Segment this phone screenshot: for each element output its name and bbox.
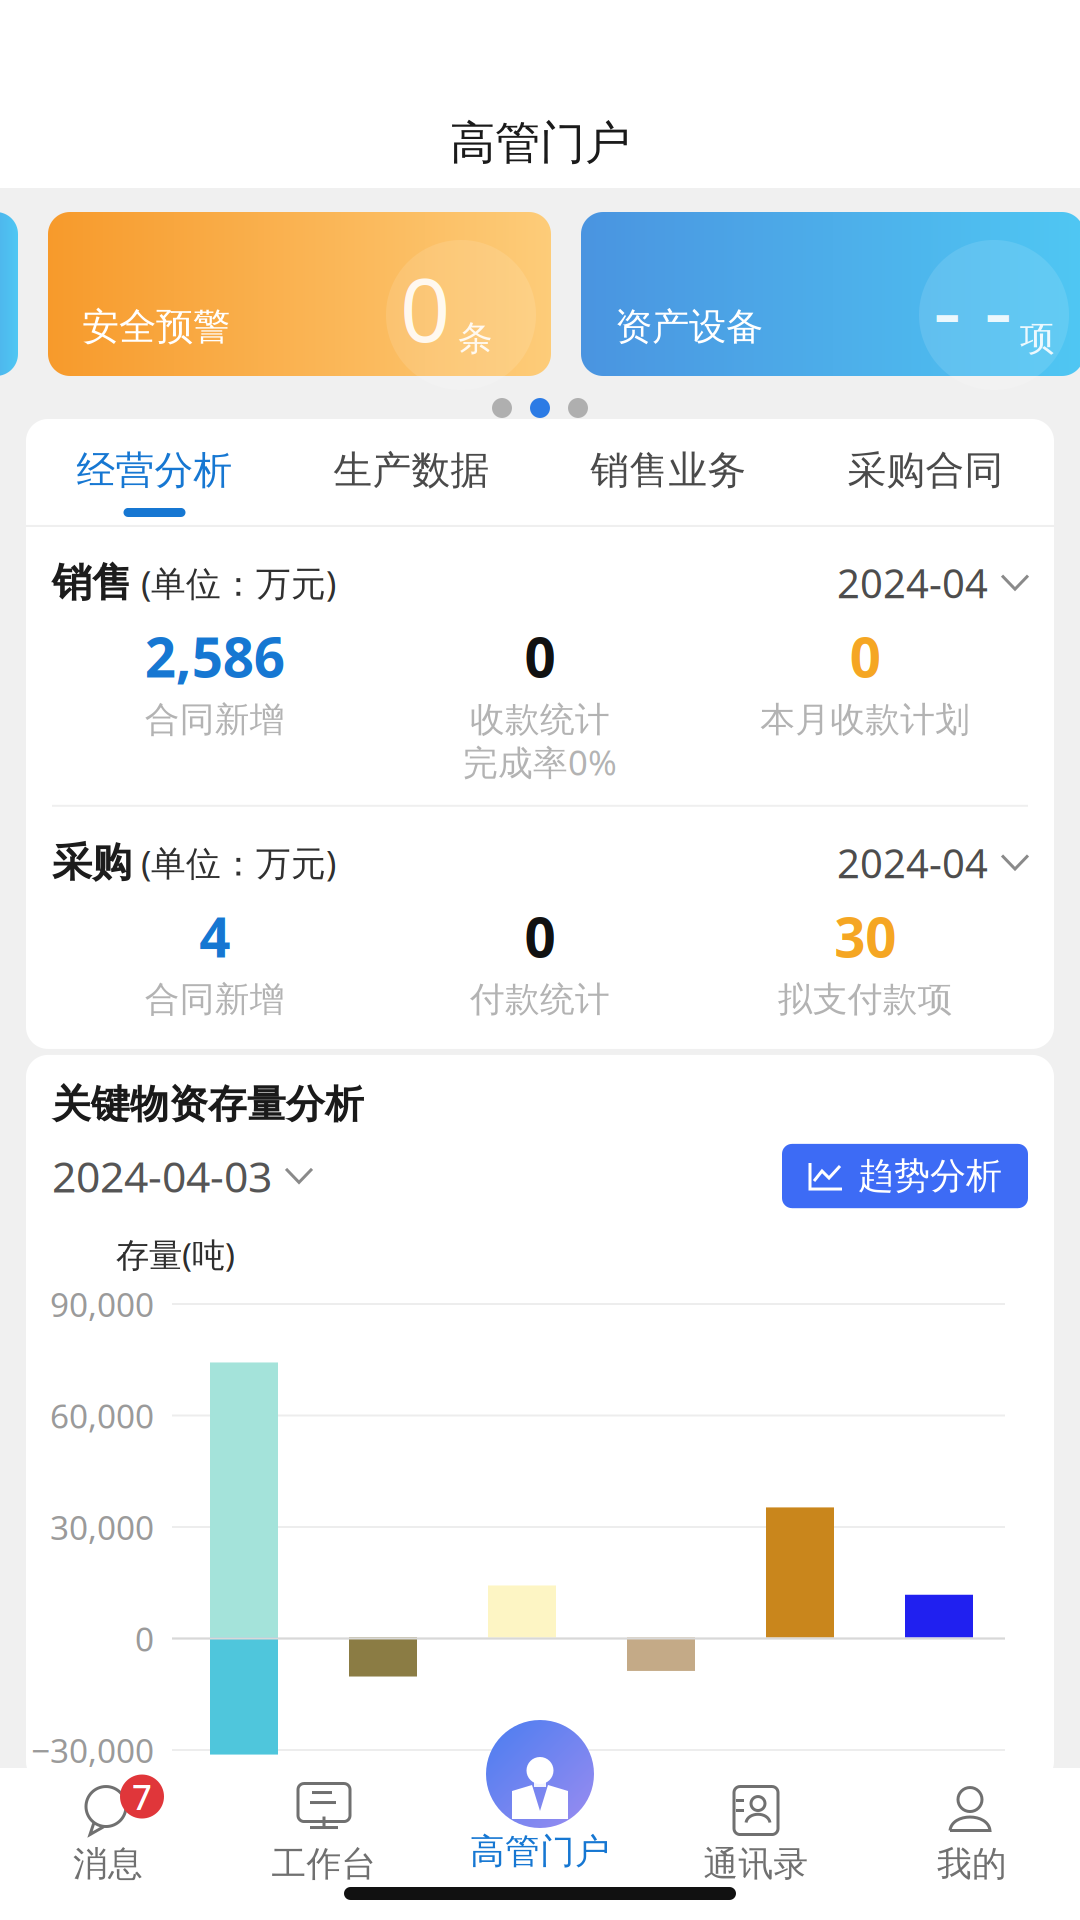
button[interactable]: 2024-04	[837, 561, 1028, 605]
button[interactable]: 工作台	[216, 1766, 432, 1881]
staticText: 销售业务	[590, 451, 746, 490]
staticText: 高管门户	[450, 120, 630, 166]
button[interactable]: 趋势分析	[782, 1144, 1028, 1208]
staticText: 趋势分析	[858, 1158, 1002, 1194]
staticText: 0	[850, 627, 881, 686]
staticText: 消息	[73, 1846, 143, 1881]
button[interactable]: 2024-04-03	[52, 1153, 312, 1199]
staticText: 完成率0%	[463, 743, 617, 781]
button[interactable]: 生产数据	[283, 441, 540, 525]
staticText: 7	[132, 1778, 152, 1815]
button[interactable]: 2024-04	[837, 841, 1028, 884]
staticText: (单位：万元)	[132, 564, 336, 602]
staticText: −30,000	[31, 1732, 154, 1768]
button[interactable]: 0	[48, 212, 551, 376]
staticText: 收款统计	[470, 702, 610, 737]
staticText: 安全预警	[82, 308, 230, 346]
staticText: 90,000	[50, 1286, 154, 1322]
staticText: 30	[834, 906, 896, 966]
staticText: 0	[524, 627, 555, 686]
staticText: 条	[458, 321, 493, 356]
staticText: 合同新增	[145, 982, 285, 1017]
staticText: (单位：万元)	[132, 844, 336, 881]
staticText: 采购	[52, 842, 132, 883]
staticText: 资产设备	[615, 308, 763, 346]
staticText: 工作台	[271, 1846, 376, 1881]
button[interactable]: - -	[581, 212, 1080, 376]
staticText: 高管门户	[470, 1834, 610, 1869]
staticText: 项	[1020, 321, 1055, 356]
staticText: 30,000	[50, 1509, 154, 1545]
staticText: 拟支付款项	[778, 982, 953, 1017]
staticText: 2024-04	[837, 841, 988, 884]
staticText: 2,586	[145, 627, 285, 686]
staticText: 0	[524, 906, 555, 966]
staticText: 存量(吨)	[116, 1236, 235, 1272]
staticText: 通讯录	[703, 1846, 808, 1881]
staticText: 合同新增	[145, 702, 285, 737]
button[interactable]: 销售业务	[540, 441, 797, 525]
staticText: 我的	[937, 1846, 1007, 1881]
staticText: 本月收款计划	[760, 702, 970, 737]
button[interactable]: 高管门户	[470, 1720, 610, 1869]
staticText: 4	[199, 906, 230, 966]
button[interactable]: 7	[0, 1766, 216, 1881]
staticText: 0	[400, 260, 450, 356]
button[interactable]: 我的	[864, 1766, 1080, 1881]
staticText: 生产数据	[333, 451, 489, 490]
button[interactable]: 通讯录	[648, 1766, 864, 1881]
staticText: 60,000	[50, 1397, 154, 1434]
staticText: 经营分析	[76, 451, 232, 490]
staticText: 销售	[52, 563, 132, 603]
staticText: 2024-04-03	[52, 1153, 272, 1199]
staticText: 0	[135, 1620, 154, 1657]
staticText: - -	[933, 260, 1012, 356]
button[interactable]: 采购合同	[797, 441, 1054, 525]
staticText: 采购合同	[847, 451, 1003, 490]
staticText: 2024-04	[837, 561, 988, 605]
button[interactable]: 经营分析	[26, 441, 283, 525]
staticText: 付款统计	[470, 982, 610, 1017]
staticText: 关键物资存量分析	[52, 1085, 364, 1124]
